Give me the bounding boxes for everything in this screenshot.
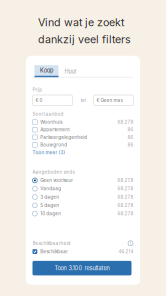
staticText: Appartement [40, 127, 69, 132]
staticText: 5 dagen [40, 203, 59, 208]
staticText: 68.278 [117, 119, 133, 125]
staticText: tot [80, 97, 85, 103]
staticText: 68.278 [117, 194, 133, 200]
staticText: Vind wat je zoekt [38, 16, 124, 29]
staticText: Woonhuis [40, 119, 62, 125]
button[interactable]: 5 dagen [32, 201, 133, 209]
button[interactable]: 3 dagen [32, 193, 133, 201]
button[interactable]: Toon meer (3) [32, 149, 133, 156]
button[interactable]: Vandaag [32, 185, 133, 193]
staticText: 68.278 [117, 178, 133, 183]
staticText: Toon 3.100 resultaten [54, 265, 109, 271]
staticText: Vandaag [40, 186, 61, 191]
button[interactable]: Parkeergelegenheid [32, 133, 133, 141]
button[interactable]: Woonhuis [32, 118, 133, 126]
button[interactable]: € 0 [32, 95, 72, 105]
staticText: € Geen max [96, 97, 122, 103]
button[interactable]: Beschikbaar [32, 248, 133, 255]
staticText: dankzij veel filters [38, 33, 131, 46]
staticText: 46.214 [118, 249, 133, 254]
staticText: Toon meer (3) [32, 150, 65, 155]
button[interactable]: Appartement [32, 126, 133, 133]
staticText: i [130, 241, 131, 246]
staticText: Geen voorkeur [40, 178, 73, 183]
staticText: Prijs [32, 87, 41, 92]
staticText: Koop [40, 67, 53, 74]
button[interactable]: Koop [34, 65, 58, 78]
staticText: 3 dagen [40, 194, 59, 200]
staticText: Aangeboden sinds [32, 169, 74, 175]
staticText: Beschikbaarheid [32, 240, 70, 246]
staticText: Beschikbaar [40, 249, 68, 254]
button[interactable]: Toon 3.100 resultaten [32, 261, 131, 275]
staticText: 86 [127, 142, 133, 148]
button[interactable]: Bouwgrond [32, 141, 133, 149]
staticText: 68.278 [117, 203, 133, 208]
staticText: 10 dagen [40, 211, 61, 216]
staticText: Soort aanbod [32, 111, 63, 117]
staticText: 68.278 [117, 186, 133, 191]
button[interactable]: Geen voorkeur [32, 176, 133, 185]
button[interactable]: 10 dagen [32, 209, 133, 218]
staticText: 68.278 [117, 211, 133, 216]
staticText: 86 [127, 134, 133, 140]
staticText: € 0 [35, 97, 42, 103]
staticText: Parkeergelegenheid [40, 134, 87, 140]
button[interactable]: Informatie over beschikbaarheid [127, 240, 133, 246]
staticText: Bouwgrond [40, 142, 67, 148]
button[interactable]: Huur [58, 65, 82, 78]
staticText: 86 [127, 127, 133, 132]
staticText: Huur [64, 68, 76, 75]
button[interactable]: € Geen max [93, 95, 133, 105]
